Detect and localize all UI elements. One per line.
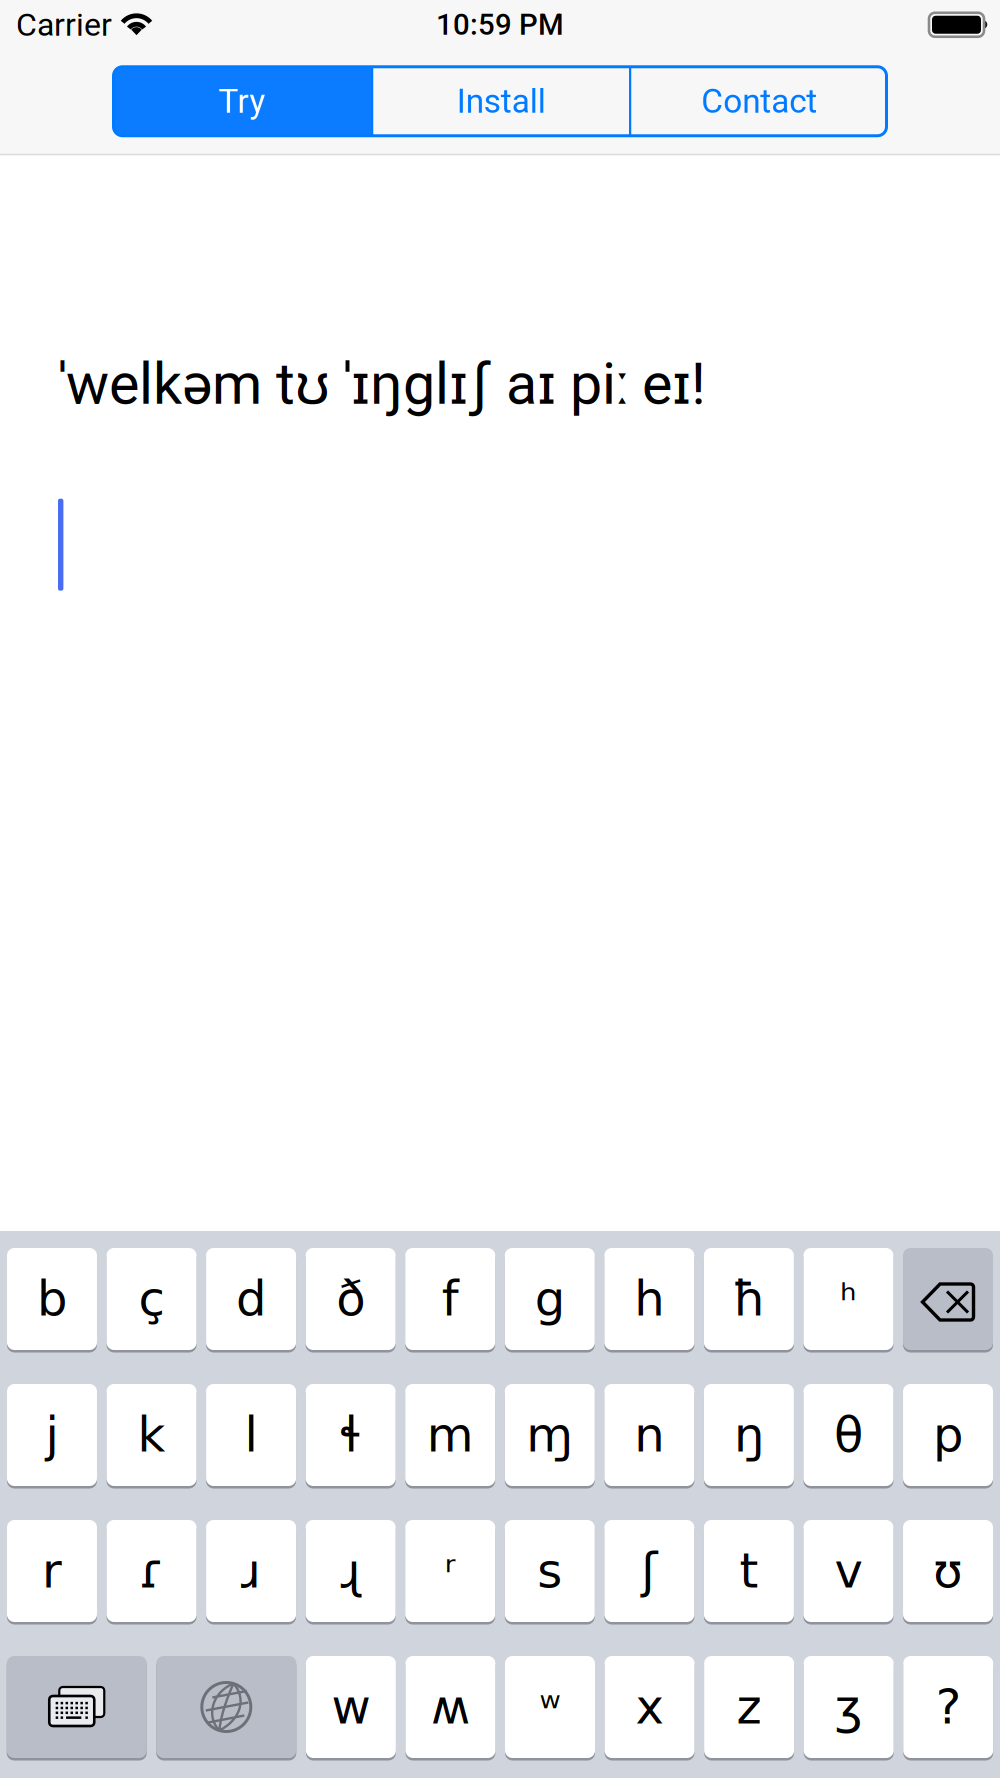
button[interactable]: ʰ: [803, 1246, 893, 1351]
staticText: ħ: [732, 1271, 765, 1327]
staticText: b: [37, 1271, 67, 1327]
button[interactable]: h: [604, 1246, 694, 1351]
button[interactable]: ʷ: [505, 1654, 595, 1759]
staticText: ɬ: [339, 1407, 362, 1463]
button[interactable]: ɱ: [505, 1382, 595, 1487]
staticText: ð: [336, 1271, 365, 1327]
button[interactable]: g: [505, 1246, 595, 1351]
staticText: n: [634, 1407, 664, 1463]
staticText: r: [42, 1543, 62, 1599]
button[interactable]: t: [704, 1518, 794, 1623]
staticText: ʍ: [431, 1679, 470, 1735]
staticText: ʰ: [840, 1276, 857, 1324]
button[interactable]: ʳ: [405, 1518, 495, 1623]
staticText: ?: [936, 1679, 961, 1735]
staticText: t: [739, 1543, 758, 1599]
button[interactable]: ʃ: [604, 1518, 694, 1623]
button[interactable]: s: [505, 1518, 595, 1623]
staticText: ɱ: [526, 1407, 573, 1463]
staticText: Contact: [701, 82, 817, 121]
staticText: g: [535, 1271, 565, 1327]
button[interactable]: Switch keyboard language: [156, 1654, 296, 1759]
button[interactable]: ʊ: [903, 1518, 993, 1623]
staticText: ç: [138, 1271, 164, 1327]
button[interactable]: n: [604, 1382, 694, 1487]
button[interactable]: w: [306, 1654, 396, 1759]
button[interactable]: p: [903, 1382, 993, 1487]
button[interactable]: Contact: [631, 67, 887, 136]
staticText: l: [245, 1407, 258, 1463]
staticText: w: [331, 1679, 370, 1735]
button[interactable]: k: [106, 1382, 196, 1487]
button[interactable]: ɾ: [106, 1518, 196, 1623]
staticText: ɾ: [139, 1543, 164, 1599]
staticText: ʷ: [539, 1684, 560, 1732]
staticText: h: [634, 1271, 664, 1327]
staticText: ˈwelkəm tʊ ˈɪŋglɪʃ aɪ piː eɪ!: [59, 350, 706, 418]
staticText: d: [236, 1271, 266, 1327]
staticText: ɻ: [341, 1543, 361, 1599]
staticText: f: [442, 1271, 459, 1327]
button[interactable]: b: [7, 1246, 97, 1351]
button[interactable]: d: [206, 1246, 296, 1351]
button[interactable]: ʍ: [405, 1654, 495, 1759]
staticText: ŋ: [734, 1407, 764, 1463]
staticText: ʒ: [835, 1679, 863, 1735]
staticText: k: [137, 1407, 165, 1463]
button[interactable]: f: [405, 1246, 495, 1351]
button[interactable]: v: [803, 1518, 893, 1623]
button[interactable]: r: [7, 1518, 97, 1623]
button[interactable]: ?: [903, 1654, 993, 1759]
staticText: v: [834, 1543, 862, 1599]
button[interactable]: ʒ: [804, 1654, 894, 1759]
button[interactable]: θ: [803, 1382, 893, 1487]
staticText: s: [537, 1543, 562, 1599]
button[interactable]: Install: [373, 67, 629, 136]
button[interactable]: Delete: [903, 1246, 993, 1351]
button[interactable]: j: [7, 1382, 97, 1487]
staticText: Try: [218, 82, 265, 121]
staticText: ʳ: [445, 1548, 456, 1596]
button[interactable]: ɬ: [306, 1382, 396, 1487]
button[interactable]: z: [704, 1654, 794, 1759]
button[interactable]: ħ: [704, 1246, 794, 1351]
staticText: Install: [457, 82, 546, 121]
button[interactable]: ɻ: [306, 1518, 396, 1623]
staticText: Carrier: [16, 6, 112, 43]
staticText: m: [427, 1407, 474, 1463]
staticText: ʃ: [641, 1543, 657, 1599]
button[interactable]: l: [206, 1382, 296, 1487]
staticText: ʊ: [933, 1543, 963, 1599]
staticText: p: [933, 1407, 963, 1463]
staticText: z: [737, 1679, 762, 1735]
staticText: θ: [834, 1407, 863, 1463]
button[interactable]: m: [405, 1382, 495, 1487]
button[interactable]: ç: [106, 1246, 196, 1351]
button[interactable]: Next keyboard: [7, 1654, 147, 1759]
staticText: j: [45, 1407, 58, 1463]
button[interactable]: ŋ: [704, 1382, 794, 1487]
staticText: x: [636, 1679, 664, 1735]
staticText: ɹ: [241, 1543, 261, 1599]
button[interactable]: x: [605, 1654, 695, 1759]
button[interactable]: ɹ: [206, 1518, 296, 1623]
staticText: 10:59 PM: [436, 8, 564, 42]
button[interactable]: ð: [306, 1246, 396, 1351]
button[interactable]: Try: [113, 67, 371, 136]
